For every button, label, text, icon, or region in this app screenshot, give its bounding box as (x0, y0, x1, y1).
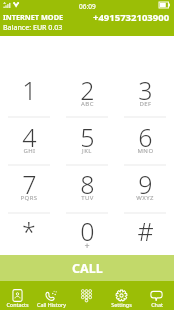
staticText: +4915732103900 (93, 11, 170, 24)
button[interactable]: Settings (104, 281, 139, 310)
button[interactable]: Call History (34, 281, 69, 310)
staticText: Settings (111, 301, 132, 308)
staticText: INTERNET MODE (3, 12, 64, 22)
staticText: + (84, 239, 90, 251)
button[interactable]: Chat (139, 281, 174, 310)
staticText: # (137, 214, 154, 248)
button[interactable]: * (0, 214, 58, 248)
staticText: Balance: EUR 0.03 (3, 22, 63, 32)
staticText: 4 (22, 120, 37, 154)
staticText: Chat (151, 301, 163, 308)
button[interactable]: Keypad (69, 281, 104, 310)
staticText: 1 (22, 73, 37, 107)
button[interactable]: 4 (0, 120, 58, 154)
button[interactable]: 5 (58, 120, 116, 154)
staticText: JKL (82, 147, 92, 155)
staticText: 0 (80, 214, 95, 248)
button[interactable]: 2 (58, 73, 116, 107)
button[interactable]: 7 (0, 167, 58, 201)
staticText: ABC (81, 100, 94, 108)
staticText: DEF (139, 100, 152, 108)
staticText: 5 (80, 120, 95, 154)
staticText: PQRS (20, 194, 38, 202)
staticText: 6 (138, 120, 153, 154)
staticText: 2 (80, 73, 95, 107)
staticText: 7 (22, 167, 37, 201)
staticText: GHI (23, 147, 36, 155)
staticText: 3 (138, 73, 153, 107)
staticText: WXYZ (136, 194, 154, 202)
button[interactable]: CALL (0, 255, 174, 281)
button[interactable]: Contacts (0, 281, 34, 310)
button[interactable]: 0 (58, 214, 116, 248)
button[interactable]: # (116, 214, 174, 248)
button[interactable]: 1 (0, 73, 58, 107)
staticText: Contacts (6, 301, 29, 308)
button[interactable]: 9 (116, 167, 174, 201)
staticText: 8 (80, 167, 95, 201)
button[interactable]: 8 (58, 167, 116, 201)
staticText: CALL (72, 260, 103, 277)
staticText: TUV (81, 194, 94, 202)
staticText: 06:09 (79, 2, 96, 11)
staticText: * (22, 214, 36, 248)
button[interactable]: 6 (116, 120, 174, 154)
staticText: 9 (138, 167, 153, 201)
staticText: Call History (37, 301, 66, 308)
staticText: MNO (137, 147, 154, 155)
button[interactable]: 3 (116, 73, 174, 107)
